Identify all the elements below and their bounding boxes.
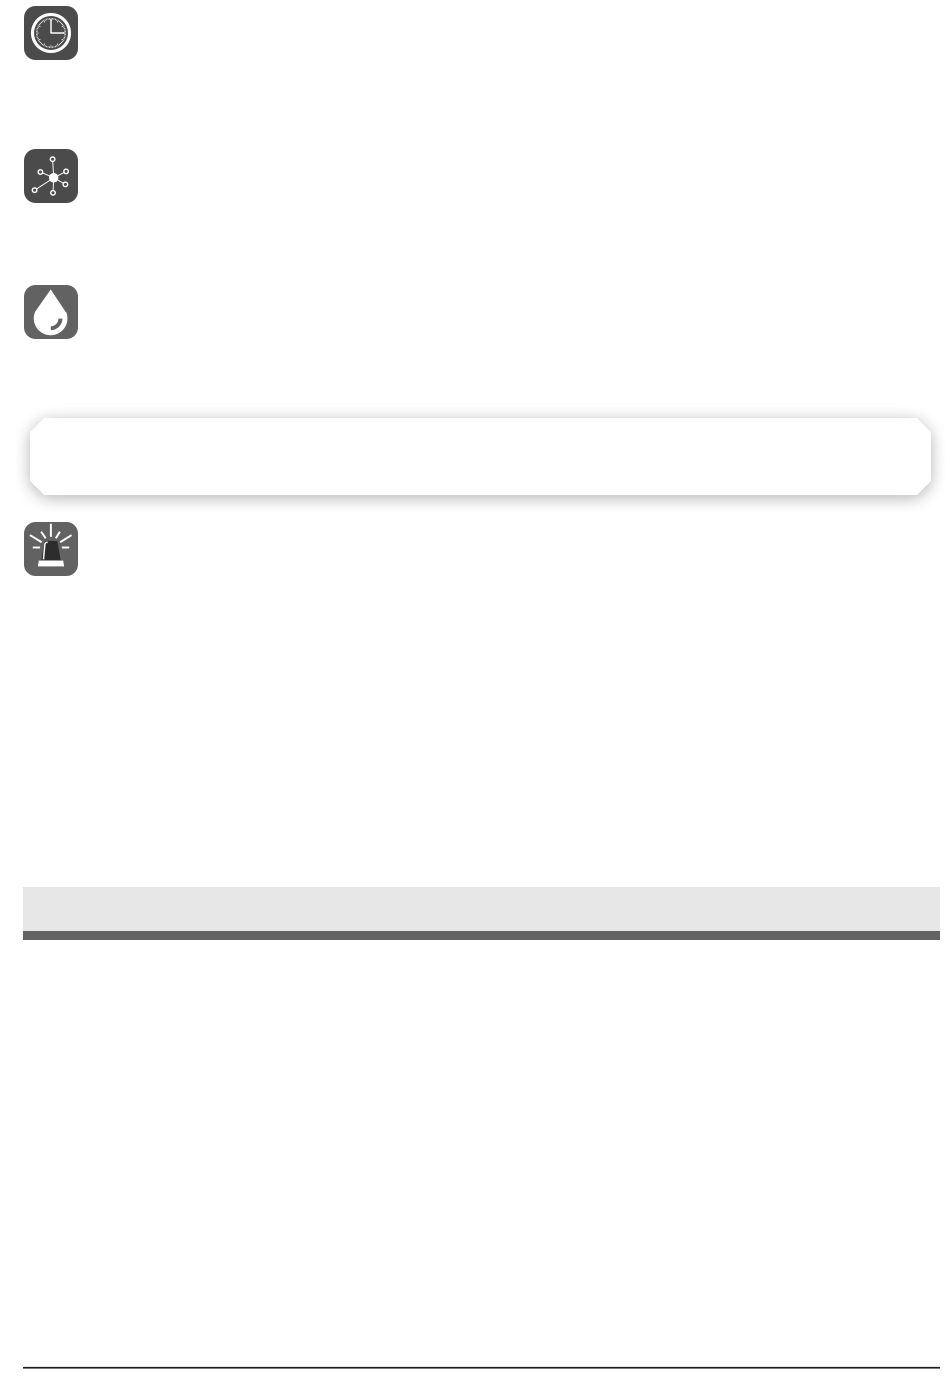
- button[interactable]: Status: [23, 887, 940, 940]
- button[interactable]: Alarm: [24, 522, 926, 576]
- button[interactable]: Schedule: [24, 6, 926, 60]
- button[interactable]: Network: [24, 149, 926, 203]
- button[interactable]: Humidity: [24, 285, 926, 339]
